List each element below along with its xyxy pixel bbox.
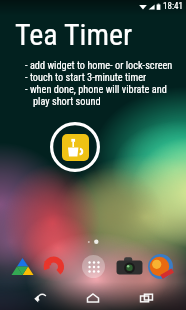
button[interactable]: Tea Timer widget <box>50 122 100 172</box>
button[interactable]: Opera <box>40 253 66 279</box>
staticText: 18:41 <box>163 1 183 12</box>
button[interactable]: Back <box>27 287 55 309</box>
button[interactable]: Apps <box>79 252 107 280</box>
staticText: - add widget to home- or lock-screen <box>25 59 173 71</box>
button[interactable]: Firefox <box>146 252 174 280</box>
staticText: play short sound <box>33 95 101 107</box>
staticText: Tea Timer <box>15 17 133 52</box>
button[interactable]: Recents <box>132 287 160 309</box>
button[interactable]: Camera <box>115 252 143 280</box>
staticText: - touch to start 3-minute timer <box>25 71 147 83</box>
staticText: - when done, phone will vibrate and <box>25 83 167 95</box>
button[interactable]: Home <box>79 287 107 309</box>
button[interactable]: Drive <box>9 253 35 279</box>
